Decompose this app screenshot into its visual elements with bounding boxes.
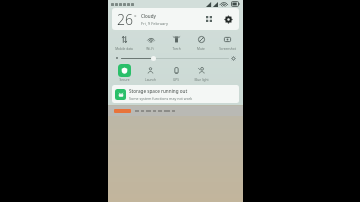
staticText: ° [134, 13, 137, 21]
staticText: Wi-Fi [146, 47, 154, 51]
button[interactable]: Mobile data [112, 33, 136, 51]
staticText: Launch [145, 78, 156, 82]
button[interactable]: Brightness [151, 56, 156, 61]
button[interactable]: Settings [222, 13, 234, 25]
staticText: Mute [197, 47, 205, 51]
button[interactable]: Mute [189, 33, 213, 51]
staticText: GPS [173, 78, 179, 82]
staticText: Secure [119, 78, 130, 82]
staticText: Storage space running out [129, 88, 188, 94]
button[interactable]: Progress [114, 109, 131, 113]
button[interactable]: 26 [112, 8, 239, 30]
button[interactable]: Launch [138, 64, 162, 82]
staticText: 26 [117, 10, 133, 29]
button[interactable]: Screenshot [215, 33, 239, 51]
staticText: Blue light [194, 78, 209, 82]
staticText: Some system functions may not work [129, 96, 193, 101]
staticText: Mobile data [115, 47, 133, 51]
staticText: Fri, 9 February [141, 21, 169, 26]
button[interactable]: Blue light [189, 64, 213, 82]
staticText: Cloudy [141, 13, 156, 19]
button[interactable]: Torch [164, 33, 188, 51]
staticText: Screenshot [219, 47, 236, 51]
button[interactable]: Storage space running out [112, 85, 239, 103]
button[interactable]: Wi-Fi [138, 33, 162, 51]
staticText: Torch [172, 47, 181, 51]
button[interactable]: GPS [164, 64, 188, 82]
button[interactable]: Edit quick settings [203, 13, 215, 25]
button[interactable]: Secure [112, 64, 136, 82]
